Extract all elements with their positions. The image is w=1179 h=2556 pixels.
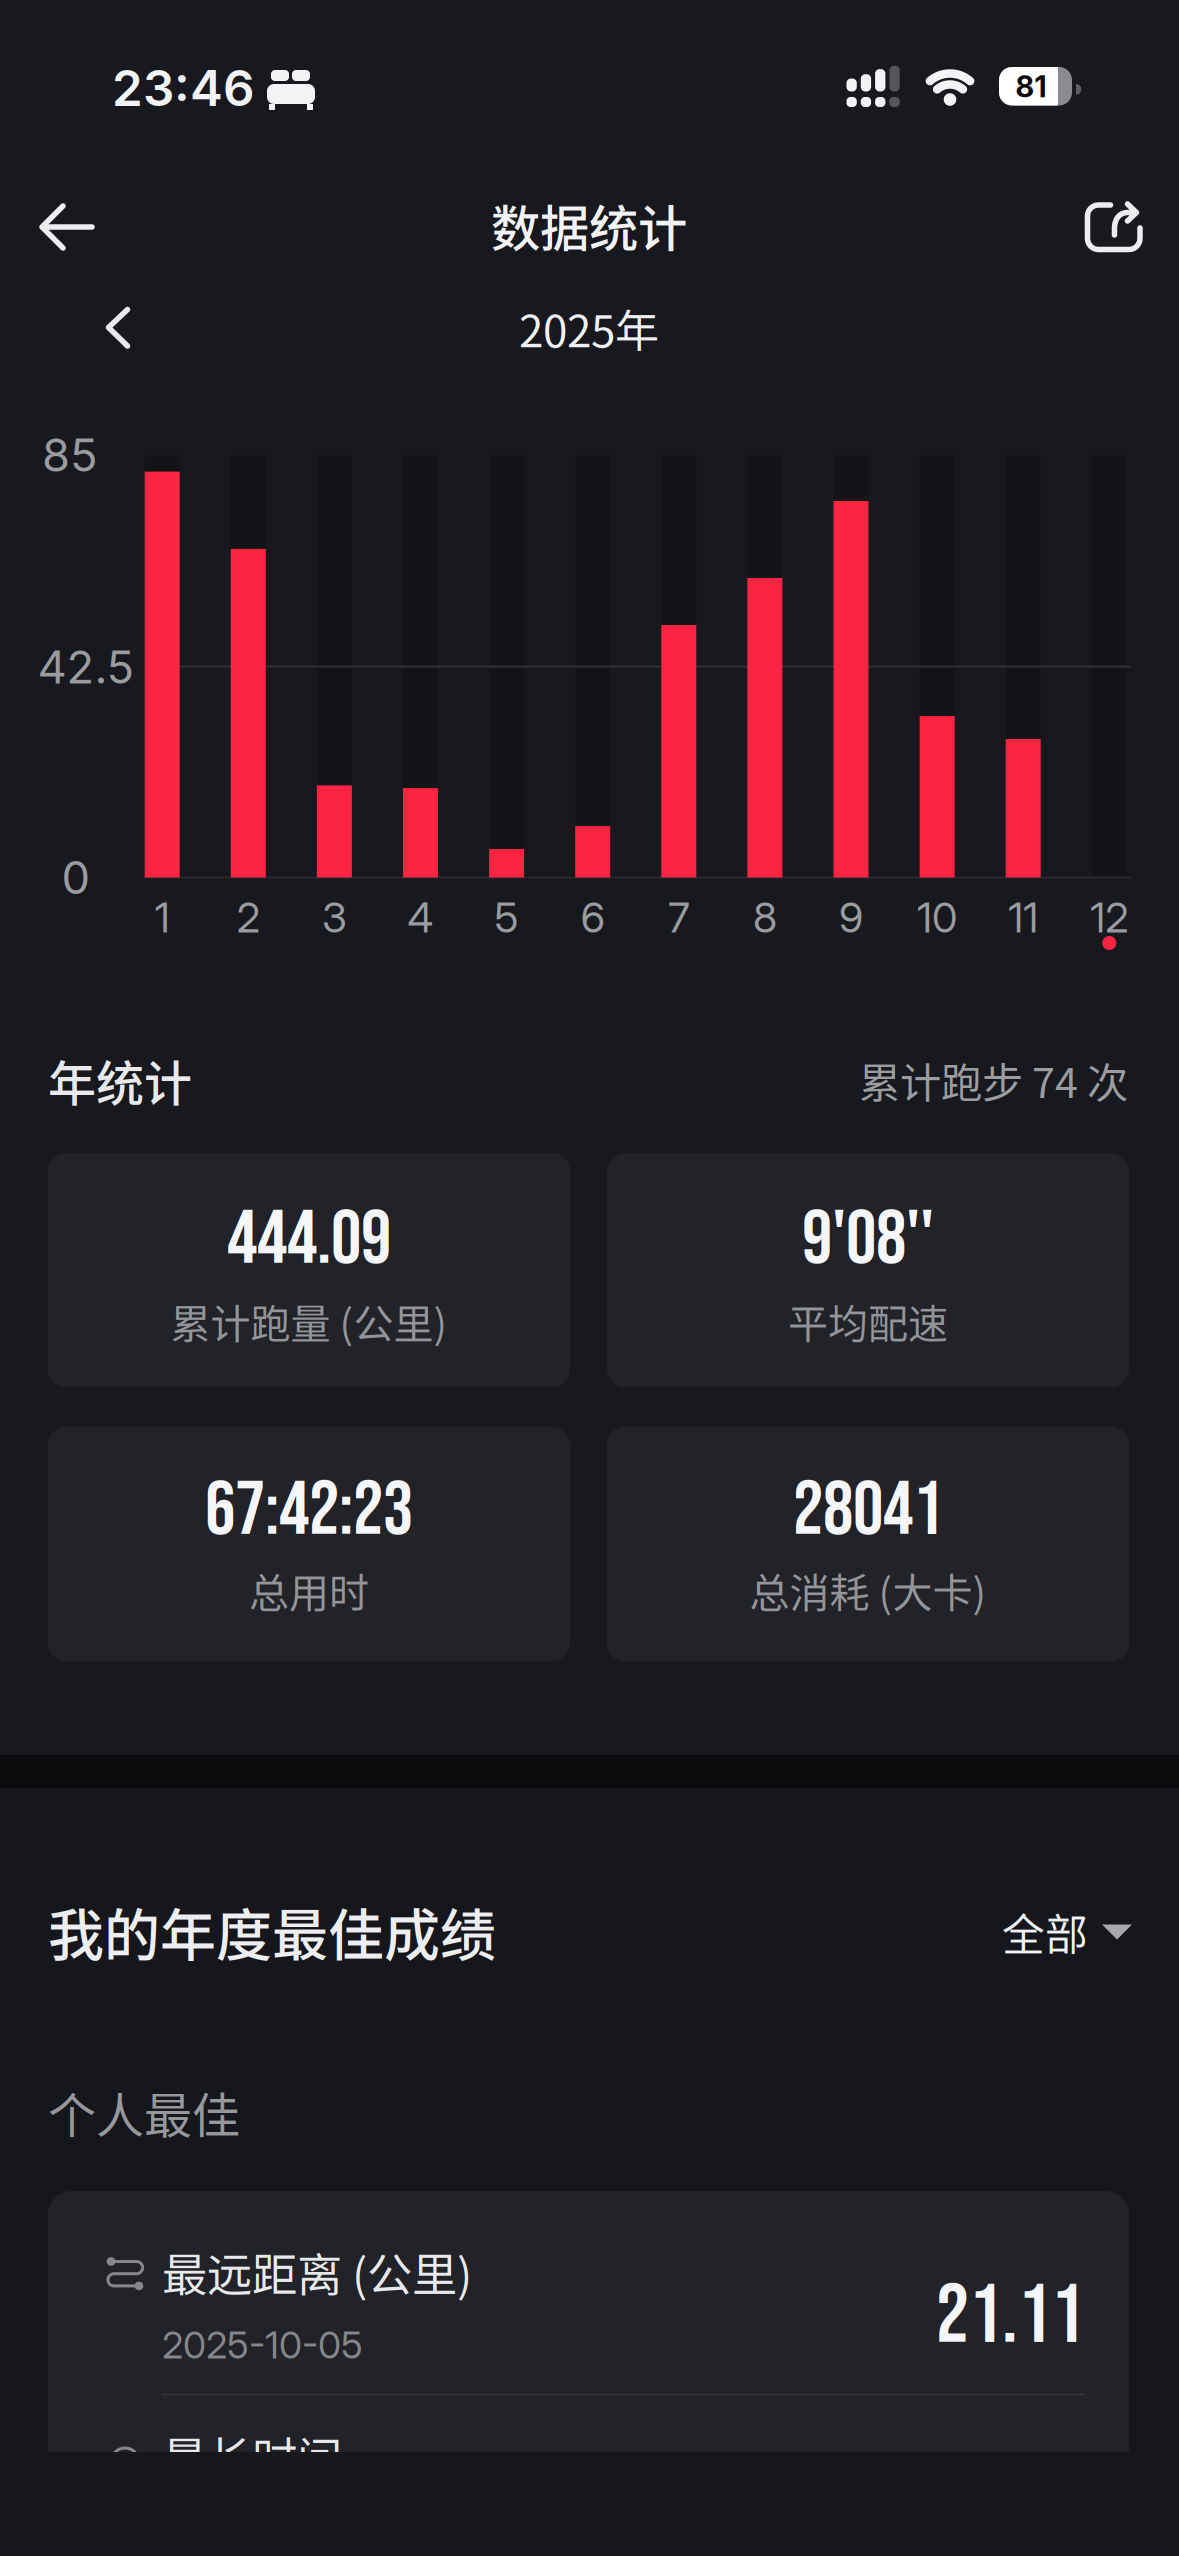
staticText: 最远距离 (公里) <box>162 2239 472 2305</box>
staticText: 年统计 <box>48 1045 192 1115</box>
button[interactable]: 返回 <box>40 205 94 249</box>
staticText: 2025年 <box>519 296 659 360</box>
button[interactable]: 最远距离 (公里) <box>48 2191 1129 2395</box>
staticText: 总用时 <box>249 1561 369 1619</box>
staticText: 累计跑步 74 次 <box>859 1050 1128 1110</box>
staticText: 81 <box>1015 69 1046 104</box>
staticText: 累计跑量 (公里) <box>170 1292 447 1350</box>
staticText: 1 <box>155 892 170 942</box>
staticText: 12 <box>1090 892 1128 942</box>
staticText: 11 <box>1008 892 1038 942</box>
staticText: 数据统计 <box>491 189 687 261</box>
staticText: 7 <box>668 892 689 942</box>
staticText: 总消耗 (大卡) <box>749 1561 986 1619</box>
staticText: 全部 <box>1002 1901 1088 1963</box>
staticText: 5 <box>495 892 519 942</box>
button[interactable]: 分享 <box>1084 202 1142 253</box>
staticText: 4 <box>407 892 433 942</box>
staticText: 67:42:23 <box>205 1465 413 1557</box>
staticText: 0 <box>61 850 90 905</box>
staticText: 42.5 <box>37 640 134 694</box>
staticText: 9'08'' <box>802 1194 934 1286</box>
staticText: 8 <box>753 892 777 942</box>
staticText: 平均配速 <box>788 1292 948 1350</box>
staticText: 最长时间 <box>162 2423 342 2489</box>
staticText: 9 <box>839 892 863 942</box>
staticText: 444.09 <box>227 1194 391 1286</box>
staticText: 3 <box>322 892 347 942</box>
staticText: 85 <box>42 428 98 482</box>
staticText: 6 <box>581 892 605 942</box>
button[interactable]: 上一年 <box>107 308 129 347</box>
staticText: 23:46 <box>112 58 255 118</box>
staticText: 我的年度最佳成绩 <box>48 1890 496 1972</box>
staticText: 2 <box>237 892 260 942</box>
staticText: 10 <box>917 892 957 942</box>
staticText: 28041 <box>793 1465 943 1557</box>
button[interactable]: 全部 <box>1002 1901 1132 1963</box>
staticText: 21.11 <box>936 2267 1084 2367</box>
staticText: 个人最佳 <box>48 2077 240 2147</box>
staticText: 2025-10-05 <box>162 2322 363 2368</box>
